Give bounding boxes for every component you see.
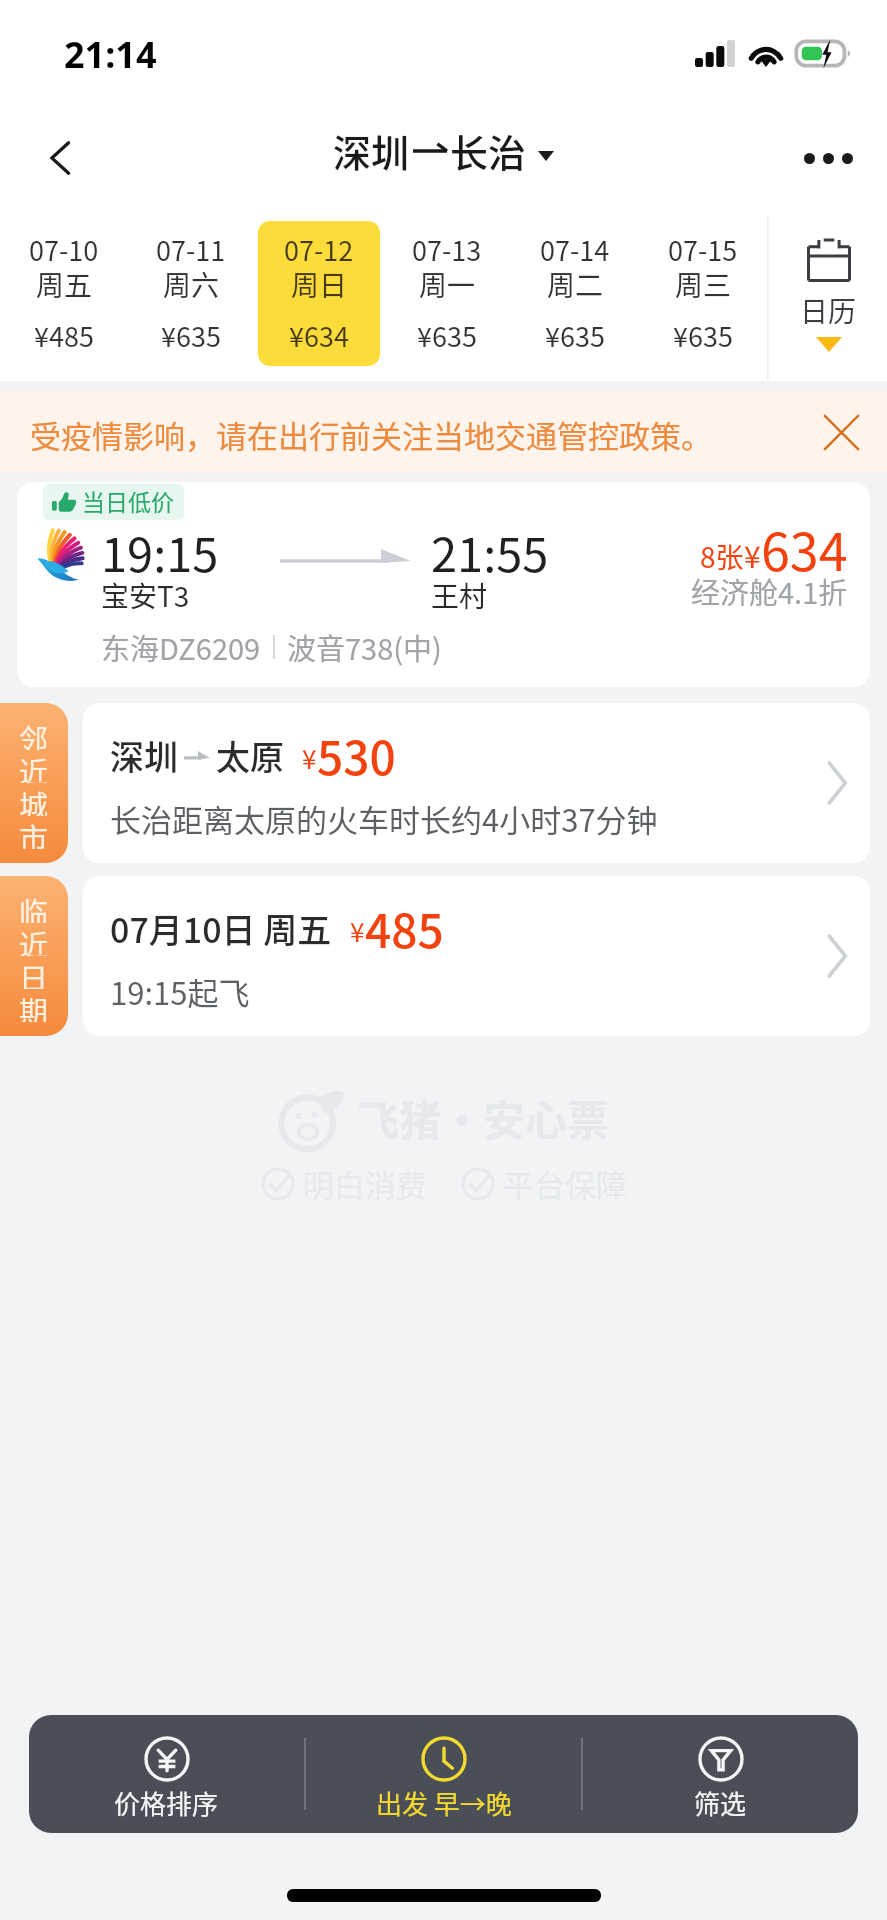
staticText: 周二 (547, 264, 604, 305)
button[interactable]: 更多 (793, 123, 863, 193)
staticText: 周六 (163, 264, 220, 305)
staticText: 出发 早→晚 (376, 1784, 512, 1822)
staticText: 王村 (431, 575, 488, 616)
staticText: 周一 (419, 264, 476, 305)
button[interactable]: 返回 (26, 123, 96, 193)
staticText: 周日 (291, 264, 348, 305)
staticText: 市 (19, 816, 49, 849)
button[interactable]: 临 (0, 876, 68, 1036)
button[interactable]: 07-14 (514, 221, 636, 366)
staticText: 波音738(中) (287, 626, 442, 668)
staticText: 07-12 (284, 230, 354, 269)
staticText: 日 (19, 956, 49, 989)
staticText: 东海DZ6209 (101, 626, 261, 668)
staticText: 受疫情影响，请在出行前关注当地交通管控政策。 (30, 412, 712, 457)
staticText: 21:14 (64, 30, 157, 79)
button[interactable]: 关闭 (817, 405, 871, 459)
staticText: 634 (761, 511, 848, 586)
staticText: 07-14 (540, 230, 610, 269)
staticText: 周三 (675, 264, 732, 305)
staticText: 价格排序 (114, 1784, 219, 1822)
button[interactable]: 筛选 (583, 1715, 858, 1833)
staticText: 当日低价 (82, 484, 174, 517)
button[interactable]: 深圳 (83, 703, 870, 863)
button[interactable]: 07-10 (3, 221, 124, 366)
staticText: ¥ (350, 912, 365, 950)
button[interactable]: 出发 早→晚 (306, 1715, 581, 1833)
staticText: 筛选 (694, 1784, 747, 1822)
staticText: 07-10 (29, 230, 99, 269)
staticText: 21:55 (431, 517, 549, 585)
button[interactable]: 07-15 (642, 221, 764, 366)
button[interactable]: 邻 (0, 703, 68, 863)
button[interactable]: 日历 (770, 215, 887, 381)
button[interactable]: 07月10日 周五 (83, 876, 870, 1036)
staticText: 日历 (800, 290, 857, 331)
staticText: 近 (19, 750, 49, 783)
staticText: ¥635 (161, 316, 221, 355)
button[interactable]: 价格排序 (29, 1715, 304, 1833)
staticText: 19:15 (101, 517, 219, 585)
staticText: 485 (365, 895, 444, 962)
staticText: 宝安T3 (101, 575, 190, 616)
staticText: ¥635 (417, 316, 477, 355)
staticText: ¥485 (34, 316, 94, 355)
staticText: 530 (317, 722, 396, 789)
button[interactable]: 07-12 (258, 221, 380, 366)
staticText: 太原 (216, 731, 284, 780)
staticText: 8张 (700, 536, 744, 577)
staticText: 19:15起飞 (110, 969, 250, 1014)
button[interactable]: 受疫情影响，请在出行前关注当地交通管控政策。 (0, 391, 887, 472)
staticText: 周五 (36, 264, 93, 305)
staticText: 城 (19, 783, 49, 816)
staticText: 07-11 (156, 230, 226, 269)
staticText: 深圳 (333, 123, 410, 178)
staticText: 飞猪·安心票 (357, 1087, 610, 1148)
staticText: 近 (19, 923, 49, 956)
staticText: 07-15 (668, 230, 738, 269)
staticText: ¥ (302, 739, 317, 777)
staticText: 深圳 (110, 731, 178, 780)
staticText: 临 (19, 890, 49, 923)
button[interactable]: 07-11 (130, 221, 252, 366)
staticText: ¥635 (673, 316, 733, 355)
button[interactable]: 当日低价 (17, 482, 870, 687)
staticText: 经济舱4.1折 (691, 570, 848, 612)
staticText: 明白消费 (303, 1161, 427, 1206)
staticText: 期 (19, 989, 49, 1022)
staticText: 邻 (19, 717, 49, 750)
staticText: 长治距离太原的火车时长约4小时37分钟 (110, 796, 658, 841)
button[interactable]: 07-13 (386, 221, 508, 366)
staticText: ¥ (744, 533, 761, 576)
staticText: 长治 (450, 123, 527, 178)
staticText: ¥634 (289, 316, 349, 355)
staticText: 平台保障 (503, 1161, 627, 1206)
staticText: ¥635 (545, 316, 605, 355)
button[interactable]: 深圳 (333, 123, 554, 178)
staticText: 07月10日 周五 (110, 904, 332, 953)
staticText: 07-13 (412, 230, 482, 269)
